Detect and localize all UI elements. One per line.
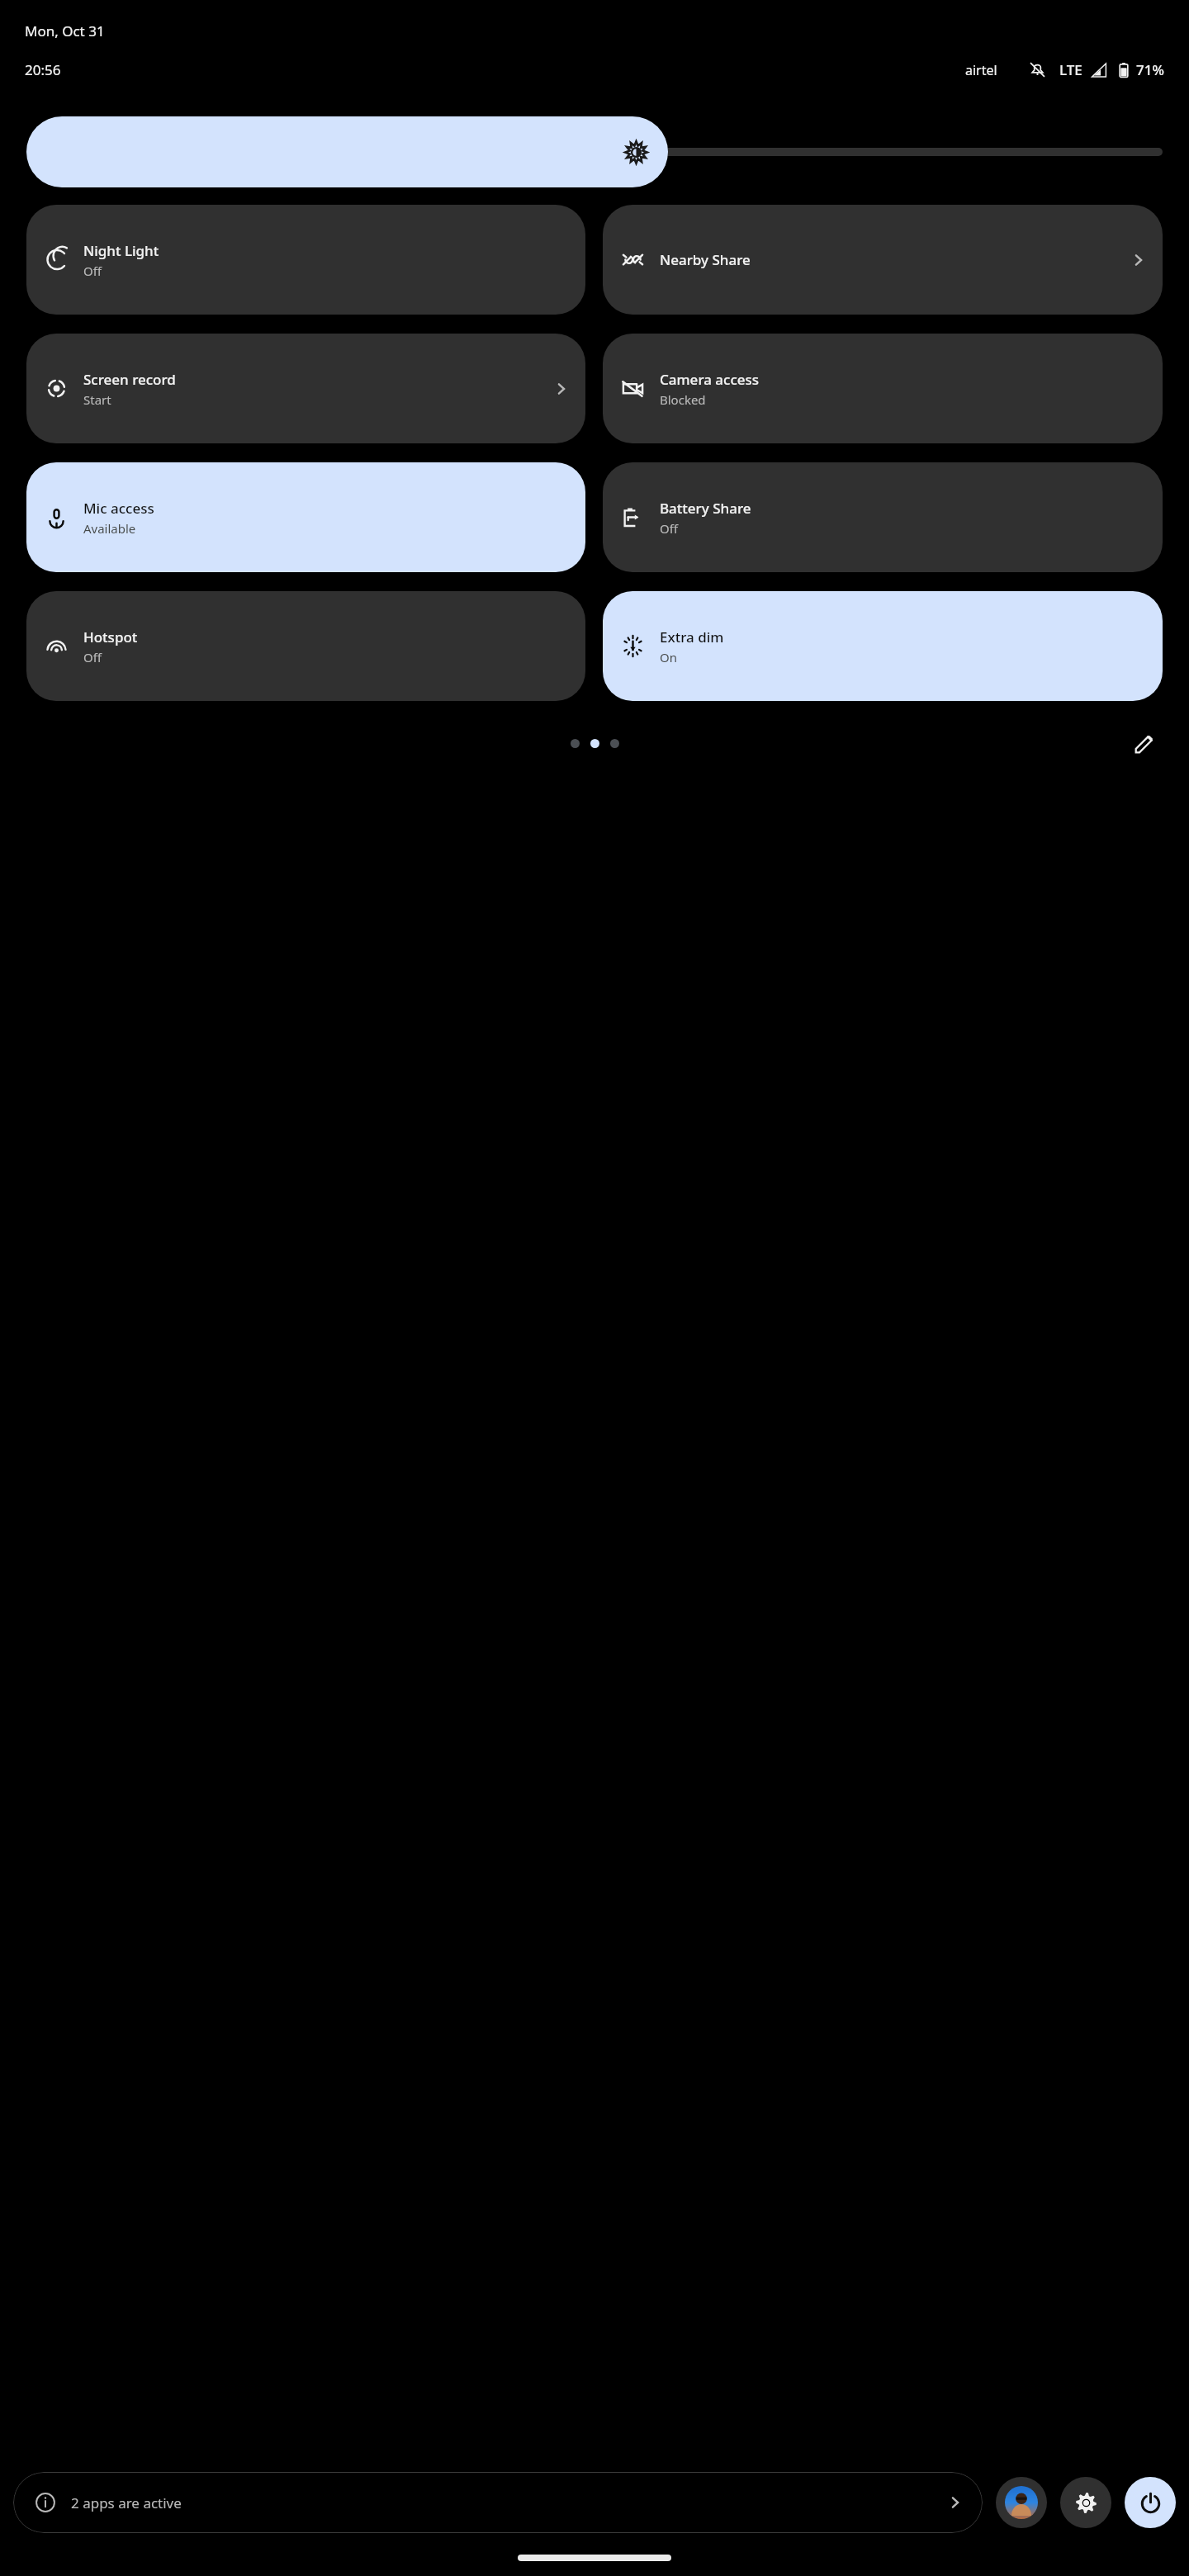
staticText: 71% <box>1136 60 1164 79</box>
button[interactable]: Extra dim <box>603 591 1163 701</box>
button[interactable]: Hotspot <box>26 591 585 701</box>
staticText: Mic access <box>83 499 154 518</box>
staticText: 2 apps are active <box>71 2493 182 2512</box>
button[interactable]: Edit tiles <box>1126 725 1163 761</box>
staticText: Off <box>83 649 102 665</box>
button[interactable]: Mic access <box>26 462 585 572</box>
staticText: Extra dim <box>660 627 724 646</box>
staticText: Battery Share <box>660 499 751 518</box>
staticText: airtel <box>965 61 997 79</box>
button[interactable]: 2 apps are active <box>13 2472 983 2533</box>
staticText: Screen record <box>83 370 176 389</box>
button[interactable]: Battery Share <box>603 462 1163 572</box>
staticText: Available <box>83 520 136 537</box>
staticText: Start <box>83 391 111 408</box>
staticText: On <box>660 649 677 665</box>
staticText: 20:56 <box>25 60 61 79</box>
staticText: Night Light <box>83 241 159 260</box>
staticText: LTE <box>1059 60 1082 79</box>
button[interactable]: User account <box>996 2477 1047 2528</box>
staticText: Off <box>660 520 679 537</box>
button[interactable]: Camera access <box>603 334 1163 443</box>
staticText: Camera access <box>660 370 760 389</box>
staticText: Nearby Share <box>660 250 751 269</box>
staticText: Mon, Oct 31 <box>25 21 105 40</box>
button[interactable]: Night Light <box>26 205 585 315</box>
button[interactable]: Nearby Share <box>603 205 1163 315</box>
button[interactable]: Brightness <box>26 116 1163 187</box>
button[interactable]: Settings <box>1060 2477 1111 2528</box>
button[interactable]: Screen record <box>26 334 585 443</box>
button[interactable]: Power <box>1125 2477 1176 2528</box>
staticText: Off <box>83 263 102 279</box>
staticText: Blocked <box>660 391 706 408</box>
staticText: Hotspot <box>83 627 138 646</box>
